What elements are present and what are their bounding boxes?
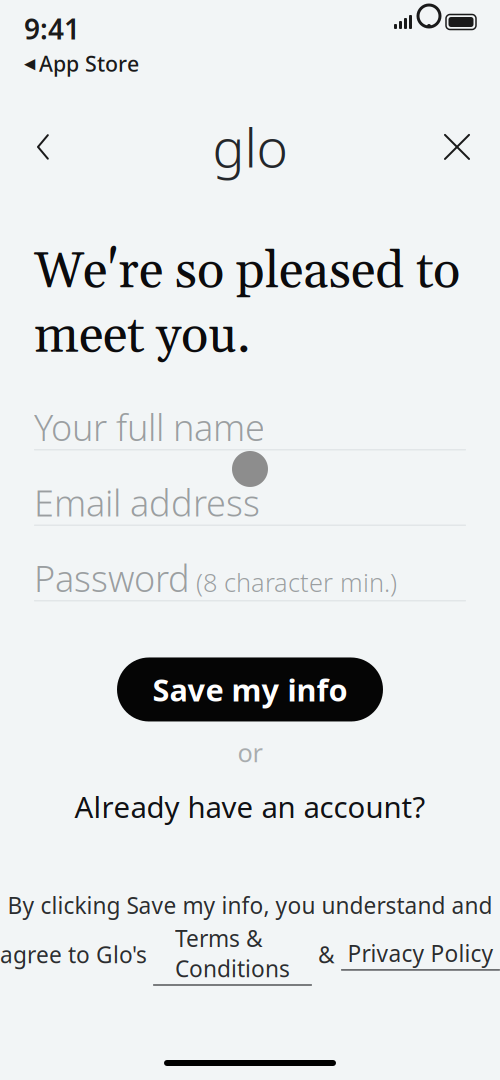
staticText: App Store — [39, 49, 139, 77]
staticText: Terms & Conditions — [175, 923, 290, 983]
staticText: Save my info — [152, 669, 347, 710]
staticText: glo — [212, 111, 287, 182]
button[interactable]: Close — [428, 118, 486, 176]
staticText: By clicking Save my info, you understand… — [7, 890, 492, 920]
staticText: We're so pleased to meet you. — [34, 240, 460, 369]
staticText: Already have an account? — [74, 787, 425, 826]
staticText: or — [237, 735, 262, 769]
staticText: Email address — [34, 479, 260, 526]
staticText: 9:41 — [24, 10, 80, 47]
button[interactable]: Already have an account? — [64, 781, 435, 832]
staticText: agree to Glo's — [0, 939, 153, 969]
staticText: Password — [34, 554, 190, 602]
button[interactable]: Back — [14, 118, 72, 176]
staticText: ◀ — [24, 55, 35, 72]
staticText: Your full name — [34, 403, 265, 451]
button[interactable]: Privacy Policy — [341, 938, 500, 970]
button[interactable]: Terms & Conditions — [153, 923, 312, 986]
staticText: & — [312, 939, 341, 969]
staticText: Privacy Policy — [347, 938, 493, 968]
staticText: (8 character min.) — [196, 565, 397, 599]
button[interactable]: Save my info — [117, 657, 383, 721]
